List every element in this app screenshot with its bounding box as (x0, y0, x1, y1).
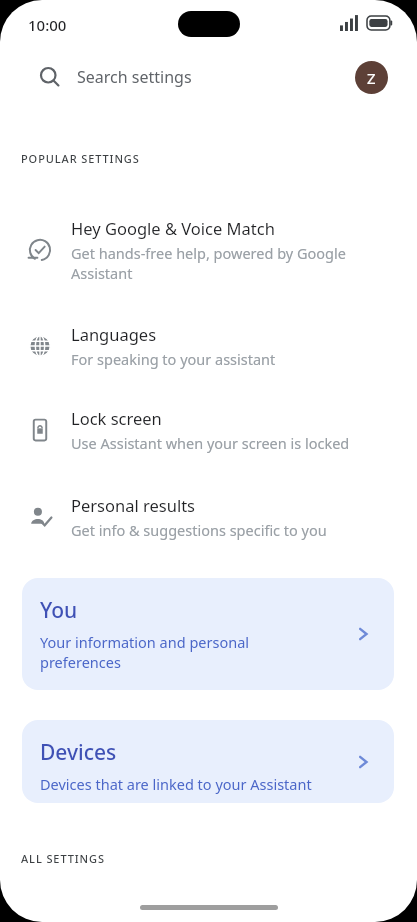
staticText: 10:00 (28, 15, 67, 35)
staticText: Z (367, 68, 376, 88)
staticText: Lock screen (71, 407, 162, 429)
staticText: Get info & suggestions specific to you (71, 520, 327, 540)
button[interactable]: You (22, 578, 394, 690)
staticText: POPULAR SETTINGS (21, 151, 140, 166)
staticText: Languages (71, 323, 157, 345)
button[interactable]: Languages (0, 320, 417, 384)
staticText: Hey Google & Voice Match (71, 217, 275, 239)
staticText: For speaking to your assistant (71, 349, 276, 369)
button[interactable]: Personal results (0, 491, 417, 555)
staticText: You (40, 596, 78, 625)
button[interactable]: Lock screen (0, 404, 417, 468)
button[interactable]: Hey Google & Voice Match (0, 214, 417, 300)
staticText: Search settings (77, 66, 192, 88)
button[interactable]: Devices (22, 720, 394, 803)
staticText: Your information and personal preference… (40, 632, 270, 673)
staticText: Devices that are linked to your Assistan… (40, 774, 312, 794)
staticText: Use Assistant when your screen is locked (71, 433, 350, 453)
staticText: ALL SETTINGS (21, 851, 105, 866)
staticText: Devices (40, 738, 117, 767)
staticText: Get hands-free help, powered by Google A… (71, 243, 376, 284)
staticText: Personal results (71, 494, 195, 516)
button[interactable]: Search settings (15, 52, 402, 102)
button[interactable]: Account (355, 61, 388, 94)
